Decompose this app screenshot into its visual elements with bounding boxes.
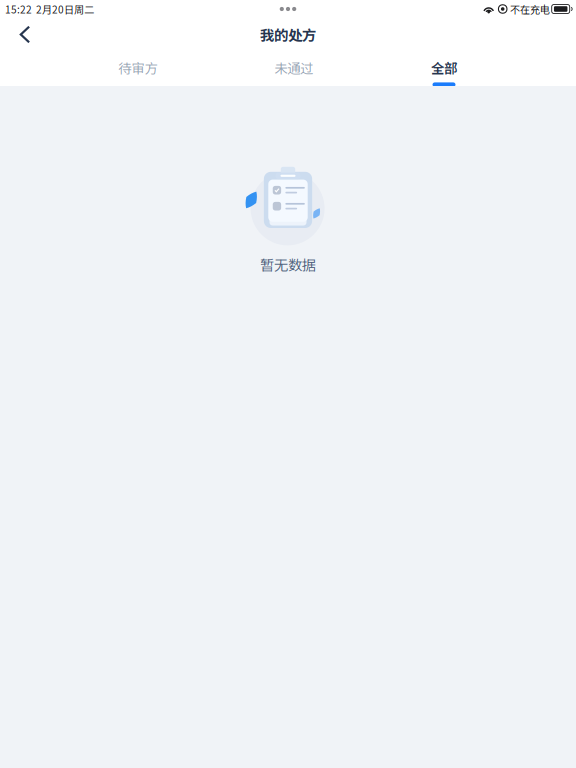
button[interactable]: 待审方 — [100, 50, 176, 87]
staticText: 不在充电 — [510, 2, 550, 16]
staticText: 待审方 — [118, 58, 157, 77]
staticText: 全部 — [431, 58, 457, 77]
button[interactable]: 未通过 — [256, 50, 332, 87]
staticText: 15:22 — [5, 2, 32, 16]
staticText: 2月20日周二 — [36, 2, 94, 16]
staticText: 未通过 — [274, 58, 313, 77]
button[interactable]: 返回 — [3, 18, 47, 51]
staticText: 我的处方 — [260, 24, 316, 45]
button[interactable]: 全部 — [406, 50, 482, 87]
staticText: 暂无数据 — [260, 254, 316, 274]
